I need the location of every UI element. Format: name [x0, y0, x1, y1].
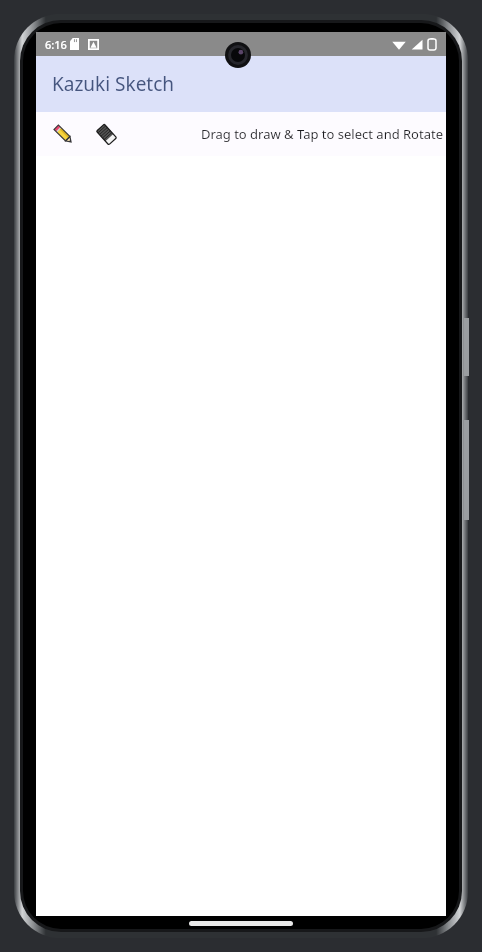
- staticText: 6:16: [45, 37, 67, 52]
- staticText: Kazuki Sketch: [52, 71, 175, 97]
- button[interactable]: Pencil tool: [43, 114, 83, 154]
- staticText: Drag to draw & Tap to select and Rotate: [200, 125, 443, 143]
- button[interactable]: Eraser tool: [86, 114, 126, 154]
